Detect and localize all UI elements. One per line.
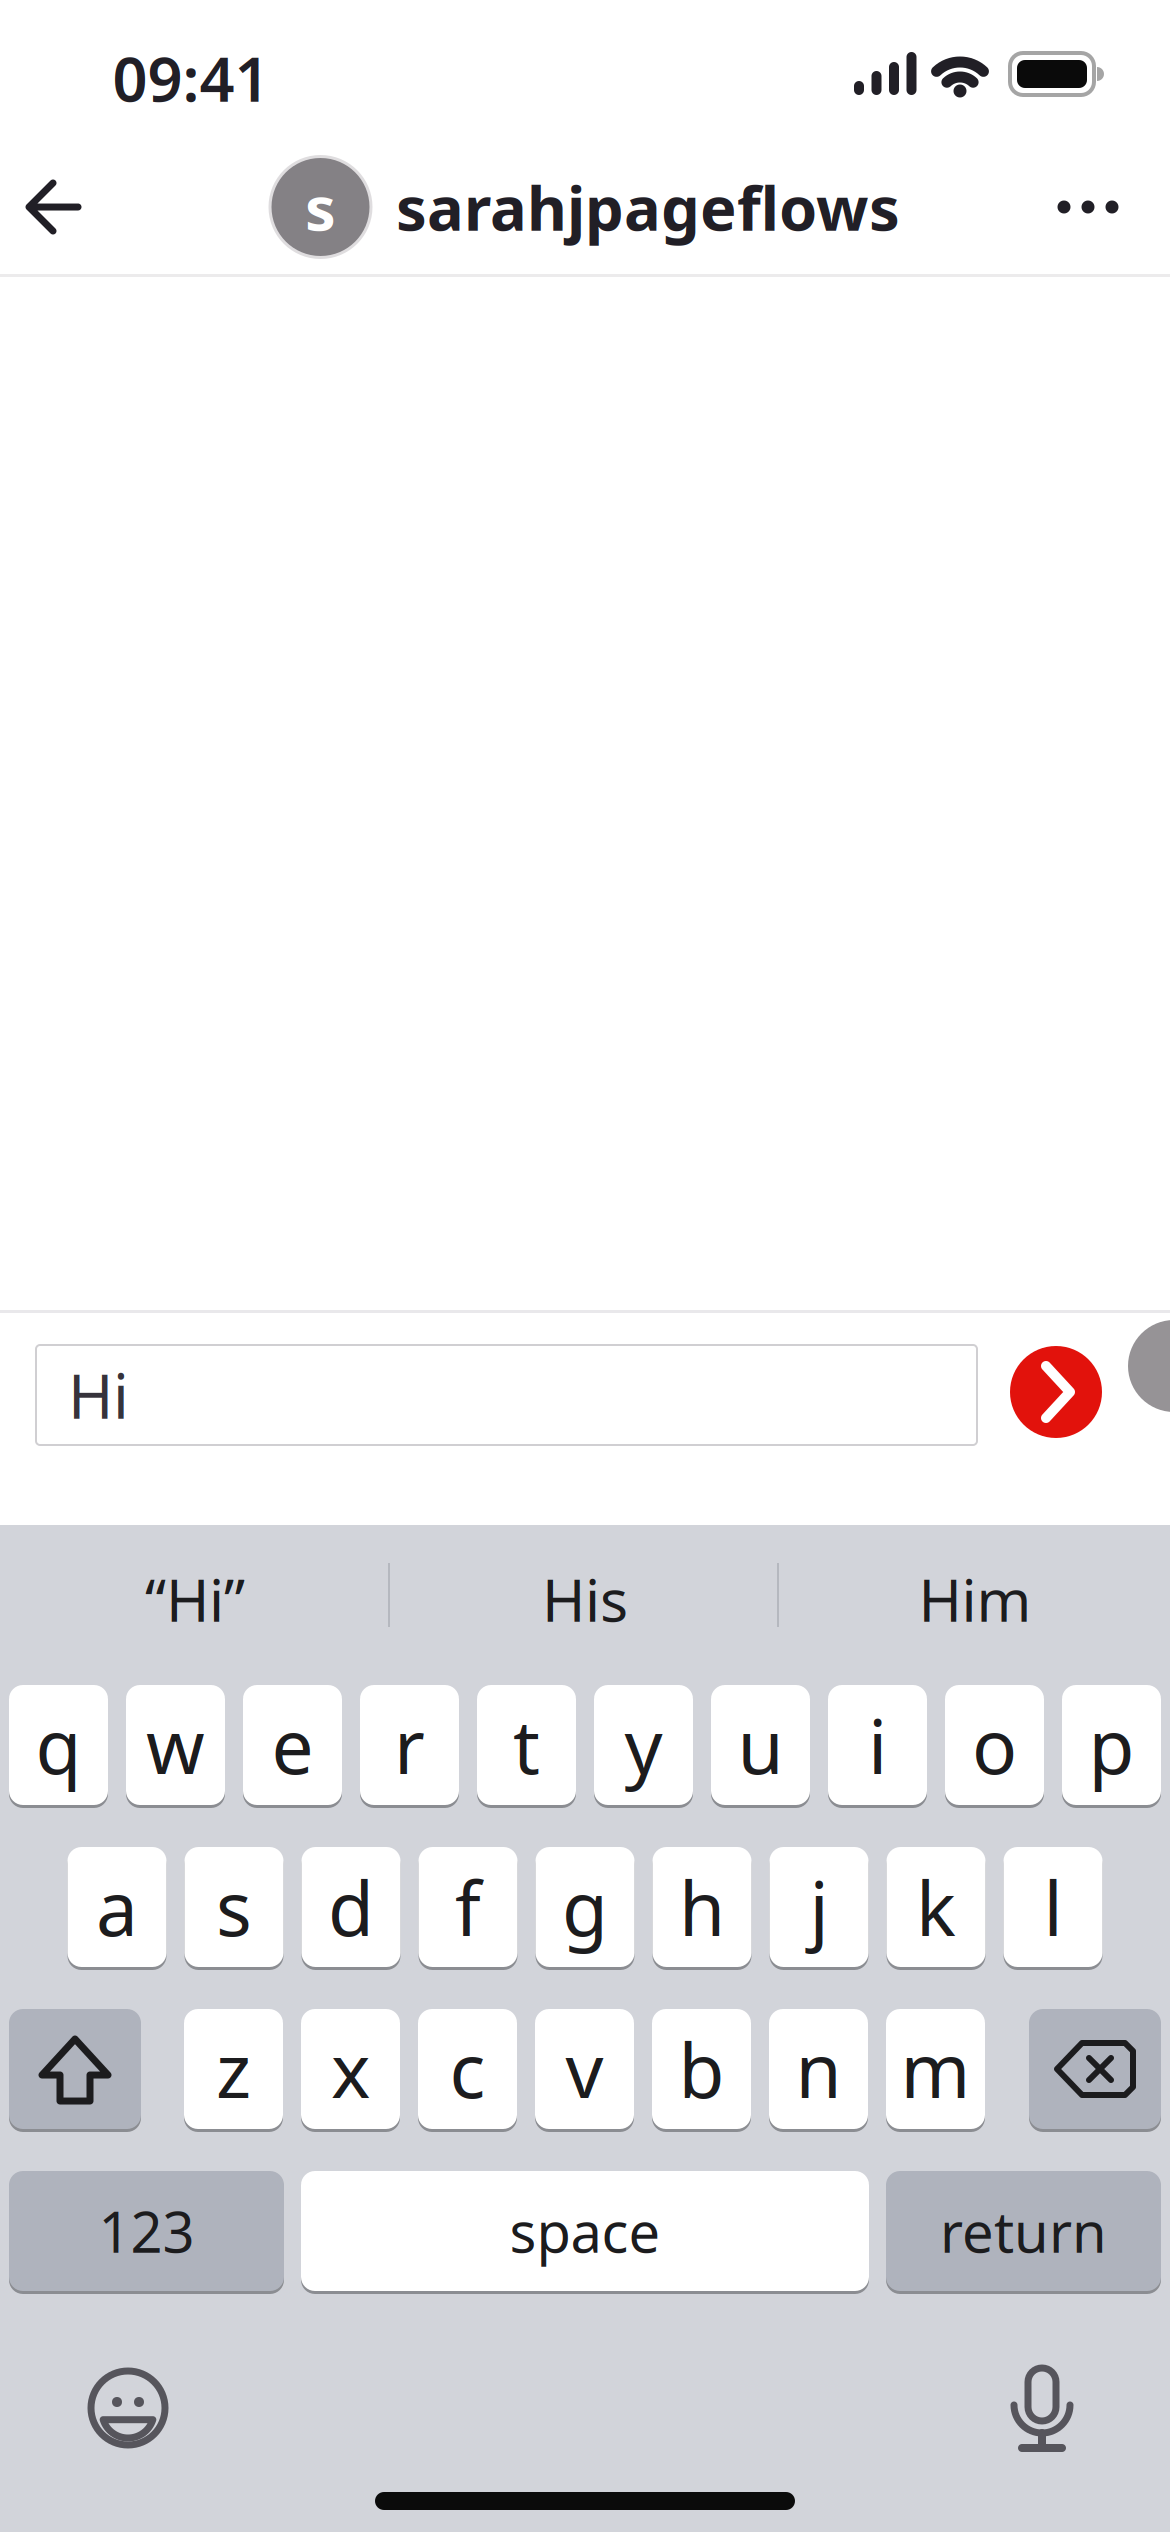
button[interactable]: Shift bbox=[9, 2006, 141, 2132]
staticText: sarahjpageflows bbox=[396, 166, 900, 248]
button[interactable]: q bbox=[9, 1682, 108, 1808]
staticText: 123 bbox=[98, 2194, 194, 2268]
staticText: h bbox=[679, 1857, 725, 1957]
button[interactable]: z bbox=[184, 2006, 283, 2132]
button[interactable]: n bbox=[769, 2006, 868, 2132]
staticText: r bbox=[394, 1695, 425, 1795]
staticText: k bbox=[916, 1857, 956, 1957]
staticText: a bbox=[96, 1857, 138, 1957]
staticText: w bbox=[146, 1695, 205, 1795]
staticText: “Hi” bbox=[145, 1560, 245, 1638]
staticText: u bbox=[737, 1695, 783, 1795]
staticText: e bbox=[271, 1695, 313, 1795]
button[interactable]: space bbox=[301, 2168, 869, 2294]
button[interactable]: Him bbox=[785, 1549, 1165, 1649]
button[interactable]: Emoji bbox=[83, 2363, 173, 2453]
button[interactable]: v bbox=[535, 2006, 634, 2132]
staticText: 09:41 bbox=[112, 37, 269, 119]
staticText: Hi bbox=[68, 1354, 129, 1436]
staticText: l bbox=[1043, 1857, 1062, 1957]
button[interactable]: Delete bbox=[1029, 2006, 1161, 2132]
staticText: p bbox=[1088, 1695, 1134, 1795]
button[interactable]: c bbox=[418, 2006, 517, 2132]
button[interactable]: o bbox=[945, 1682, 1044, 1808]
staticText: f bbox=[455, 1857, 481, 1957]
button[interactable]: More options bbox=[1033, 160, 1143, 254]
staticText: return bbox=[940, 2194, 1107, 2268]
button[interactable]: m bbox=[886, 2006, 985, 2132]
staticText: d bbox=[328, 1857, 374, 1957]
staticText: Him bbox=[918, 1560, 1031, 1638]
button[interactable]: His bbox=[395, 1549, 775, 1649]
button[interactable]: f bbox=[418, 1844, 517, 1970]
button[interactable]: d bbox=[301, 1844, 400, 1970]
button[interactable]: 123 bbox=[9, 2168, 284, 2294]
button[interactable]: i bbox=[828, 1682, 927, 1808]
button[interactable]: j bbox=[769, 1844, 868, 1970]
button[interactable]: Message bbox=[36, 1345, 977, 1445]
staticText: m bbox=[900, 2019, 970, 2119]
staticText: s bbox=[305, 166, 336, 248]
staticText: s bbox=[216, 1857, 252, 1957]
staticText: c bbox=[449, 2019, 485, 2119]
button[interactable]: h bbox=[652, 1844, 751, 1970]
button[interactable]: t bbox=[477, 1682, 576, 1808]
staticText: His bbox=[542, 1560, 628, 1638]
button[interactable]: x bbox=[301, 2006, 400, 2132]
button[interactable]: w bbox=[126, 1682, 225, 1808]
staticText: t bbox=[513, 1695, 540, 1795]
button[interactable]: a bbox=[67, 1844, 166, 1970]
staticText: q bbox=[35, 1695, 81, 1795]
button[interactable]: y bbox=[594, 1682, 693, 1808]
staticText: space bbox=[509, 2194, 660, 2268]
button[interactable]: Send bbox=[1010, 1346, 1102, 1438]
button[interactable]: Dictation bbox=[1007, 2358, 1077, 2458]
button[interactable]: u bbox=[711, 1682, 810, 1808]
button[interactable]: p bbox=[1062, 1682, 1161, 1808]
staticText: n bbox=[795, 2019, 841, 2119]
staticText: z bbox=[216, 2019, 251, 2119]
staticText: v bbox=[565, 2019, 603, 2119]
button[interactable]: l bbox=[1003, 1844, 1102, 1970]
button[interactable]: Back bbox=[4, 160, 104, 254]
staticText: j bbox=[809, 1857, 828, 1957]
staticText: g bbox=[562, 1857, 608, 1957]
button[interactable]: g bbox=[535, 1844, 634, 1970]
staticText: y bbox=[624, 1695, 662, 1795]
staticText: i bbox=[868, 1695, 887, 1795]
button[interactable]: r bbox=[360, 1682, 459, 1808]
button[interactable]: k bbox=[886, 1844, 985, 1970]
button[interactable]: s bbox=[184, 1844, 283, 1970]
button[interactable]: return bbox=[886, 2168, 1161, 2294]
staticText: b bbox=[678, 2019, 724, 2119]
button[interactable]: “Hi” bbox=[5, 1549, 385, 1649]
button[interactable]: b bbox=[652, 2006, 751, 2132]
staticText: x bbox=[331, 2019, 370, 2119]
staticText: o bbox=[972, 1695, 1017, 1795]
button[interactable]: e bbox=[243, 1682, 342, 1808]
